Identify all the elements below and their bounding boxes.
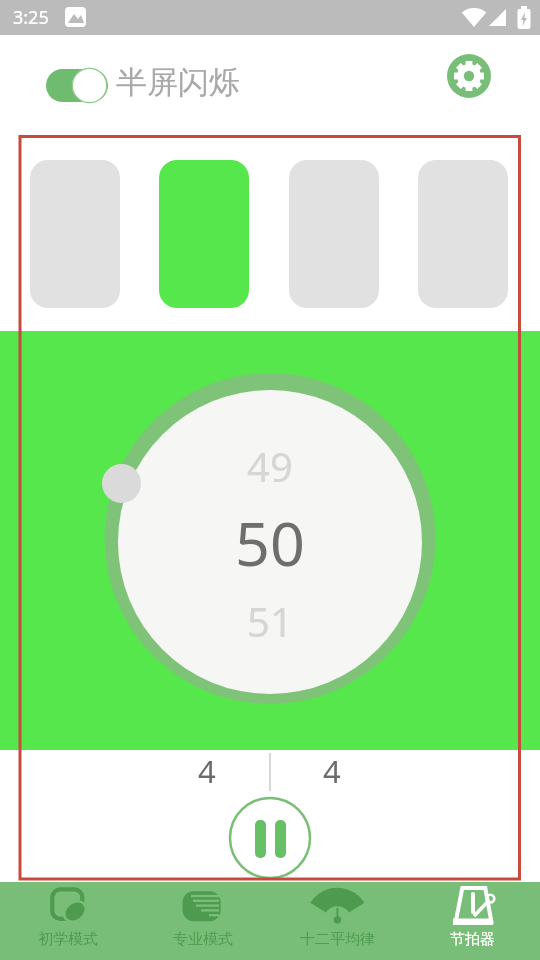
- button[interactable]: [229, 797, 311, 879]
- staticText: 50: [235, 501, 305, 584]
- staticText: 专业模式: [173, 930, 233, 949]
- staticText: 十二平均律: [300, 930, 375, 949]
- button[interactable]: [447, 54, 491, 98]
- button[interactable]: 初学模式: [0, 882, 135, 960]
- button[interactable]: 节拍器: [405, 882, 540, 960]
- button[interactable]: [46, 69, 108, 102]
- staticText: 半屏闪烁: [116, 63, 240, 102]
- staticText: 3:25: [13, 5, 49, 30]
- staticText: 4: [323, 750, 341, 792]
- staticText: 4: [198, 750, 216, 792]
- staticText: 49: [247, 439, 293, 493]
- staticText: 51: [247, 594, 293, 648]
- staticText: 节拍器: [450, 930, 495, 949]
- button[interactable]: 十二平均律: [270, 882, 405, 960]
- staticText: 初学模式: [38, 930, 98, 949]
- button[interactable]: 专业模式: [135, 882, 270, 960]
